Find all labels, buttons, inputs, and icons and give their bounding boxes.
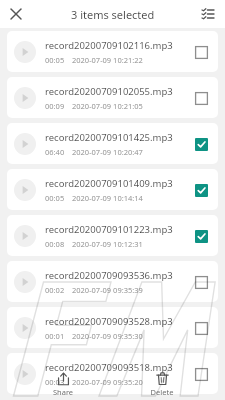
button[interactable]: record20200709093536.mp3 — [7, 261, 218, 302]
button[interactable]: record20200709093528.mp3 — [7, 307, 218, 348]
button[interactable]: record20200709102116.mp3 — [7, 31, 218, 72]
staticText: Delete — [127, 387, 197, 397]
staticText: 00:05 — [45, 193, 65, 203]
button[interactable]: Select all — [197, 3, 219, 25]
button[interactable]: Not selected — [186, 37, 216, 67]
button[interactable]: Share — [28, 372, 98, 397]
button[interactable]: record20200709102055.mp3 — [7, 77, 218, 118]
staticText: 00:03 — [45, 377, 65, 387]
staticText: record20200709093528.mp3 — [45, 315, 173, 328]
staticText: record20200709101409.mp3 — [45, 177, 173, 190]
staticText: 06:40 — [45, 147, 65, 157]
staticText: record20200709102055.mp3 — [45, 85, 173, 98]
staticText: 00:08 — [45, 239, 65, 249]
button[interactable]: record20200709101425.mp3 — [7, 123, 218, 164]
staticText: record20200709102116.mp3 — [45, 39, 173, 52]
staticText: 2020-07-09 09:35:39 — [72, 285, 143, 295]
staticText: 00:05 — [45, 55, 65, 65]
button[interactable]: Selected — [186, 129, 216, 159]
button[interactable]: Not selected — [186, 267, 216, 297]
staticText: 2020-07-09 10:12:31 — [72, 239, 143, 249]
staticText: 2020-07-09 09:35:30 — [72, 331, 143, 341]
button[interactable]: Not selected — [186, 313, 216, 343]
button[interactable]: Delete — [127, 372, 197, 397]
staticText: 2020-07-09 10:20:47 — [72, 147, 143, 157]
button[interactable]: Selected — [186, 221, 216, 251]
button[interactable]: record20200709101409.mp3 — [7, 169, 218, 210]
button[interactable]: Not selected — [186, 83, 216, 113]
button[interactable]: record20200709101223.mp3 — [7, 215, 218, 256]
staticText: 2020-07-09 10:21:05 — [72, 101, 143, 111]
staticText: record20200709093518.mp3 — [45, 361, 173, 374]
staticText: Share — [28, 387, 98, 397]
staticText: record20200709101223.mp3 — [45, 223, 173, 236]
staticText: record20200709101425.mp3 — [45, 131, 173, 144]
button[interactable]: record20200709093518.mp3 — [7, 353, 218, 394]
staticText: 00:02 — [45, 285, 65, 295]
button[interactable]: Not selected — [186, 359, 216, 389]
staticText: 2020-07-09 10:14:14 — [72, 193, 143, 203]
staticText: 00:09 — [45, 101, 65, 111]
staticText: 2020-07-09 10:21:22 — [72, 55, 143, 65]
button[interactable]: Selected — [186, 175, 216, 205]
staticText: 2020-07-09 09:35:20 — [72, 377, 143, 387]
staticText: record20200709093536.mp3 — [45, 269, 173, 282]
staticText: 3 items selected — [71, 7, 155, 22]
button[interactable]: Close — [5, 3, 27, 25]
staticText: 00:01 — [45, 331, 65, 341]
